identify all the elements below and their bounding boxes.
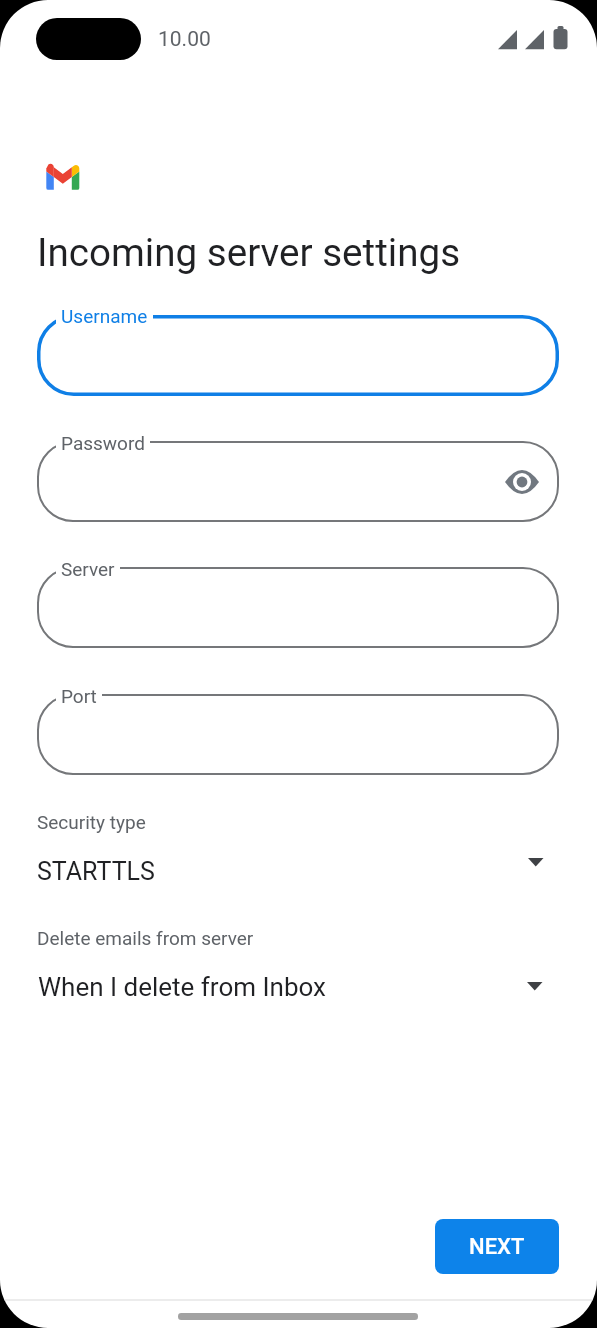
staticText: Password xyxy=(61,432,145,454)
button[interactable] xyxy=(504,468,540,496)
button[interactable]: Port xyxy=(37,694,559,775)
staticText: STARTTLS xyxy=(37,857,155,886)
staticText: NEXT xyxy=(469,1234,525,1260)
staticText: Security type xyxy=(37,811,146,833)
staticText: Username xyxy=(61,305,148,327)
staticText: When I delete from Inbox xyxy=(38,972,326,1002)
button[interactable]: NEXT xyxy=(435,1219,559,1274)
staticText: Port xyxy=(61,685,97,707)
button[interactable]: Username xyxy=(37,315,559,396)
button[interactable]: Password xyxy=(37,441,559,522)
button[interactable]: When I delete from Inbox xyxy=(37,966,559,1004)
button[interactable]: Server xyxy=(37,567,559,648)
staticText: Server xyxy=(61,558,115,580)
button[interactable]: STARTTLS xyxy=(37,848,559,886)
staticText: 10.00 xyxy=(158,27,211,52)
staticText: Delete emails from server xyxy=(37,927,254,949)
staticText: Incoming server settings xyxy=(37,230,461,275)
